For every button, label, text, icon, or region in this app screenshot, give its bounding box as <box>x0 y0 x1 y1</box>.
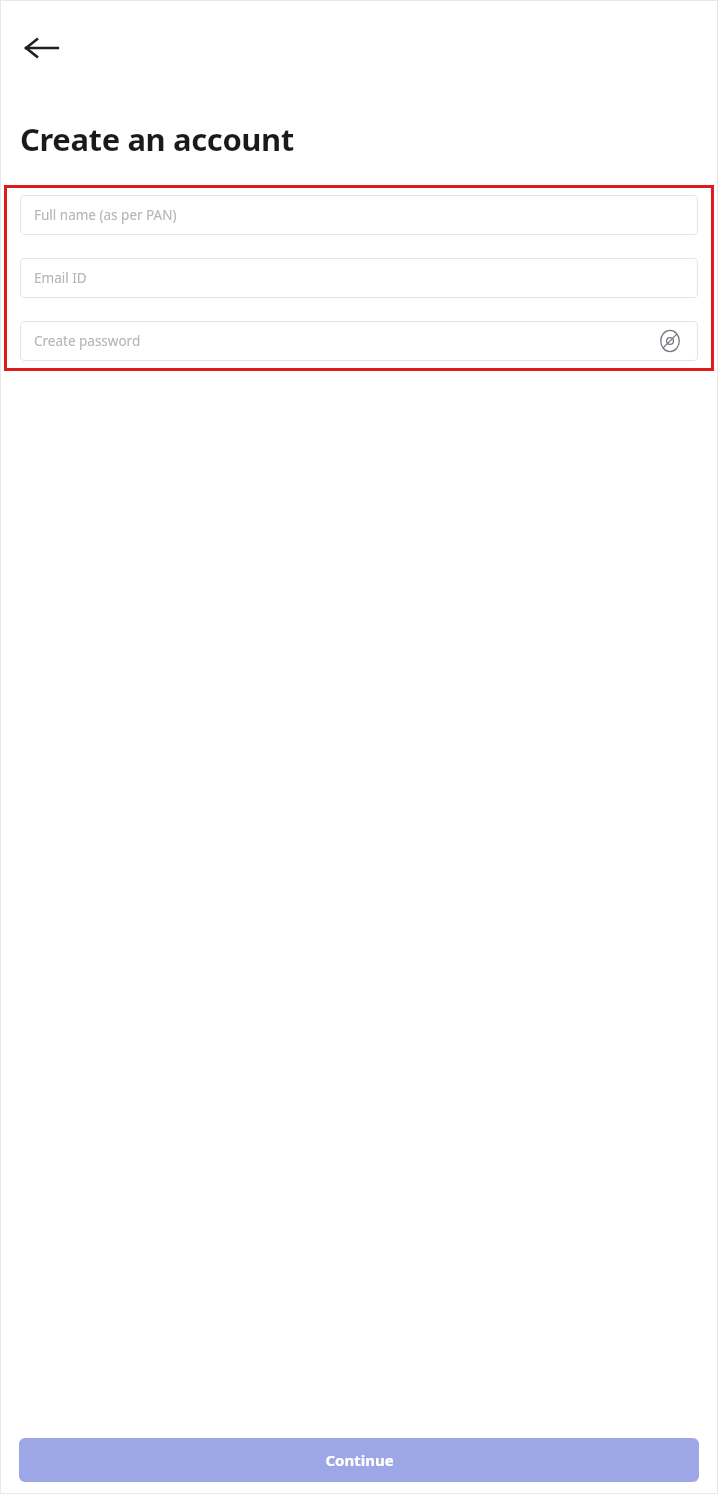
button[interactable]: Create password <box>20 321 698 361</box>
staticText: Continue <box>325 1450 394 1470</box>
button[interactable]: Email ID <box>20 258 698 298</box>
button[interactable]: Continue <box>19 1438 699 1482</box>
button[interactable]: Back <box>14 20 70 76</box>
button[interactable]: Full name (as per PAN) <box>20 195 698 235</box>
staticText: Create password <box>34 332 656 350</box>
staticText: Full name (as per PAN) <box>34 206 684 224</box>
staticText: Email ID <box>34 269 684 287</box>
staticText: Create an account <box>20 118 294 160</box>
button[interactable]: Show password <box>656 327 684 355</box>
